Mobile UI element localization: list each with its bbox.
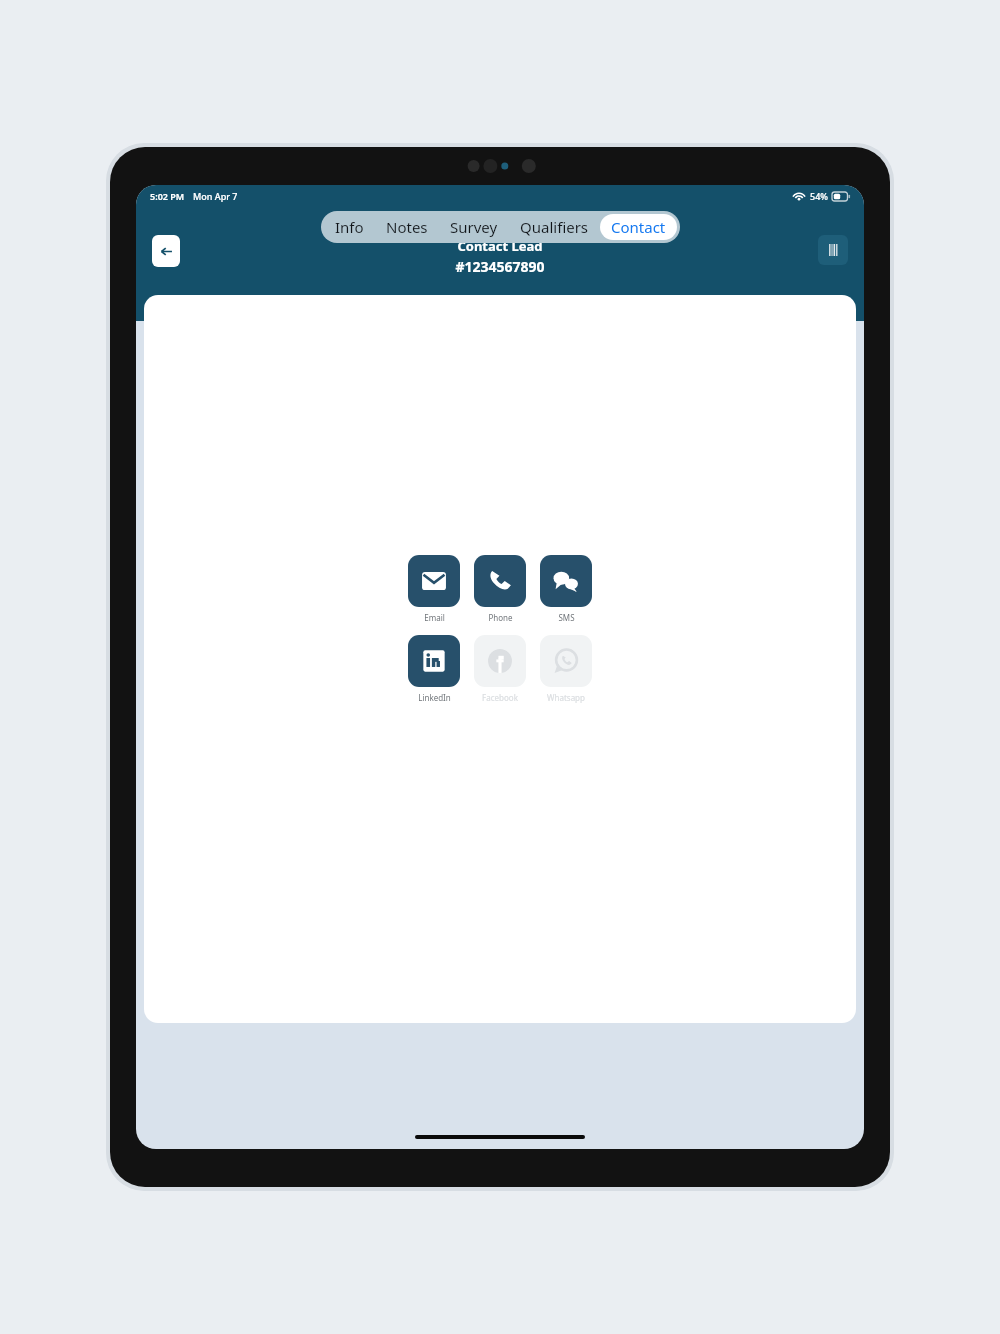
button[interactable]: Whatsapp	[540, 635, 592, 703]
button[interactable]: Email	[408, 555, 460, 623]
button[interactable]: Scan barcode	[818, 235, 848, 265]
staticText: Facebook	[482, 692, 518, 703]
staticText: Info	[335, 217, 364, 237]
staticText: LinkedIn	[418, 692, 451, 703]
staticText: Contact Lead	[457, 237, 543, 255]
button[interactable]: Contact	[600, 214, 677, 240]
staticText: Qualifiers	[520, 217, 589, 237]
button[interactable]: Facebook	[474, 635, 526, 703]
staticText: SMS	[558, 612, 575, 623]
button[interactable]: Qualifiers	[509, 211, 600, 243]
staticText: #1234567890	[455, 257, 545, 276]
staticText: Notes	[386, 217, 428, 237]
button[interactable]: SMS	[540, 555, 592, 623]
button[interactable]: Phone	[474, 555, 526, 623]
staticText: Mon Apr 7	[193, 190, 238, 202]
staticText: Phone	[488, 612, 513, 623]
staticText: Contact	[611, 217, 666, 237]
staticText: Email	[424, 612, 445, 623]
staticText: 54%	[810, 190, 828, 202]
staticText: Whatsapp	[547, 692, 585, 703]
button[interactable]: Notes	[375, 211, 439, 243]
button[interactable]: Info	[324, 211, 375, 243]
button[interactable]: LinkedIn	[408, 635, 460, 703]
button[interactable]: Back	[152, 235, 180, 267]
button[interactable]: Survey	[439, 211, 509, 243]
staticText: Survey	[450, 217, 498, 237]
staticText: 5:02 PM	[150, 190, 185, 202]
